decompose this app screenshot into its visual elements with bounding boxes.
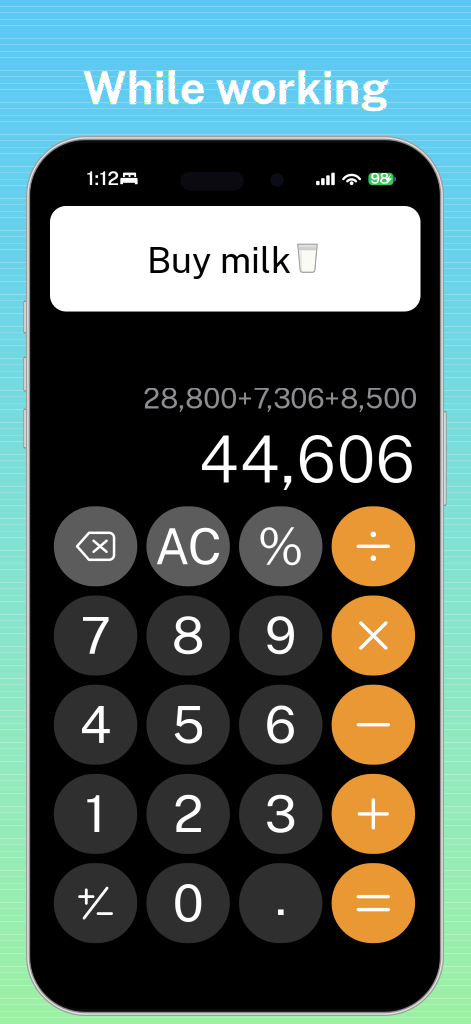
staticText: AC bbox=[155, 517, 222, 575]
button[interactable]: AC bbox=[146, 506, 230, 586]
button[interactable]: 0 bbox=[146, 863, 230, 943]
staticText: 98 bbox=[371, 170, 390, 187]
button[interactable]: Divide bbox=[332, 506, 415, 586]
button[interactable]: 1 bbox=[54, 774, 137, 854]
button[interactable]: % bbox=[239, 506, 322, 586]
button[interactable]: Buy milk bbox=[50, 206, 420, 311]
button[interactable]: 9 bbox=[239, 595, 322, 675]
staticText: 28,800+7,306+8,500 bbox=[143, 382, 417, 415]
button[interactable]: Plus bbox=[332, 774, 415, 854]
button[interactable]: 2 bbox=[146, 774, 230, 854]
button[interactable]: 5 bbox=[146, 685, 230, 765]
button[interactable]: Equals bbox=[332, 863, 415, 943]
button[interactable]: Delete bbox=[54, 506, 137, 586]
staticText: 44,606 bbox=[199, 422, 415, 497]
button[interactable]: 6 bbox=[239, 685, 322, 765]
staticText: 2 bbox=[173, 784, 203, 844]
button[interactable]: Multiply bbox=[332, 595, 415, 675]
staticText: While working bbox=[82, 61, 388, 115]
staticText: 3 bbox=[265, 784, 297, 844]
button[interactable]: . bbox=[239, 863, 322, 943]
staticText: 7 bbox=[80, 606, 110, 665]
staticText: Buy milk bbox=[147, 239, 291, 281]
button[interactable]: 7 bbox=[54, 595, 137, 675]
button[interactable]: Toggle sign bbox=[54, 863, 137, 943]
staticText: % bbox=[258, 516, 304, 576]
staticText: . bbox=[275, 867, 286, 927]
staticText: 1:12 bbox=[86, 167, 119, 189]
button[interactable]: Minus bbox=[332, 685, 415, 765]
staticText: 0 bbox=[173, 873, 204, 933]
button[interactable]: 8 bbox=[146, 595, 230, 675]
staticText: 8 bbox=[172, 606, 205, 665]
staticText: 6 bbox=[265, 695, 297, 754]
staticText: 9 bbox=[265, 606, 297, 665]
staticText: 5 bbox=[172, 695, 204, 754]
button[interactable]: 3 bbox=[239, 774, 322, 854]
button[interactable]: 4 bbox=[54, 685, 137, 765]
staticText: 4 bbox=[79, 695, 111, 754]
staticText: 1 bbox=[85, 784, 106, 844]
